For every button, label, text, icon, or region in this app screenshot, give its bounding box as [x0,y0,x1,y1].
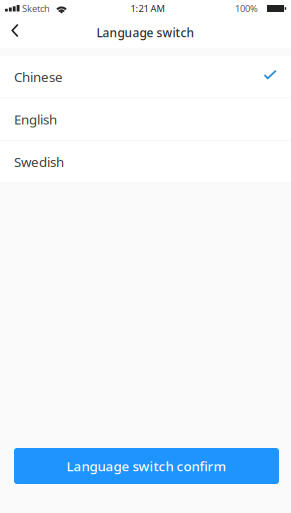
button[interactable]: Chinese [0,56,291,98]
staticText: English [14,110,57,128]
button[interactable]: English [0,98,291,141]
staticText: 100% [235,2,258,15]
button[interactable]: Back [0,17,30,47]
staticText: Language switch confirm [66,457,226,475]
staticText: Language switch [96,24,194,40]
staticText: Sketch [22,2,50,15]
staticText: Swedish [14,153,64,171]
button[interactable]: Language switch confirm [14,448,279,484]
staticText: Chinese [14,68,63,86]
button[interactable]: Swedish [0,141,291,183]
staticText: 1:21 AM [130,2,164,15]
